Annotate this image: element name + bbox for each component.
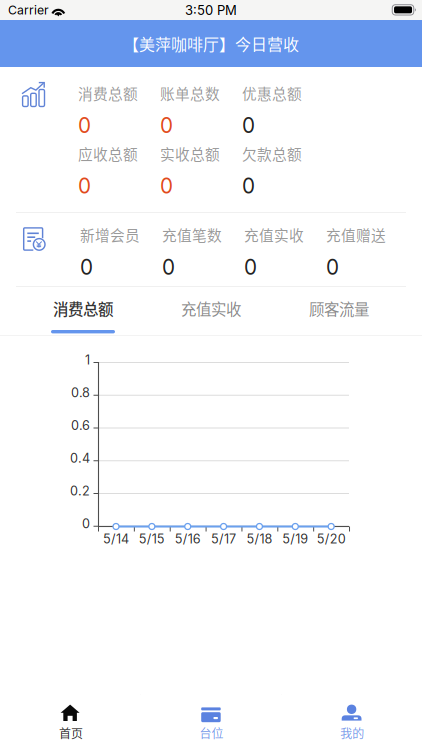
staticText: 充值实收 bbox=[244, 224, 304, 245]
staticText: 新增会员 bbox=[80, 224, 140, 245]
staticText: 0 bbox=[244, 255, 257, 280]
button[interactable]: 台位 bbox=[141, 694, 281, 750]
button[interactable]: 顾客流量 bbox=[275, 289, 403, 335]
staticText: 0.2 bbox=[70, 483, 90, 499]
staticText: 5/18 bbox=[246, 531, 272, 547]
staticText: 0 bbox=[160, 173, 173, 198]
staticText: 5/15 bbox=[139, 531, 165, 547]
staticText: 消费总额 bbox=[53, 297, 113, 320]
staticText: 充值实收 bbox=[181, 297, 241, 320]
staticText: 欠款总额 bbox=[242, 143, 302, 164]
staticText: 0 bbox=[242, 173, 255, 198]
staticText: 0 bbox=[326, 255, 339, 280]
button[interactable]: 首页 bbox=[0, 694, 141, 750]
staticText: 台位 bbox=[200, 724, 224, 742]
staticText: 充值赠送 bbox=[326, 224, 386, 245]
staticText: 消费总额 bbox=[78, 82, 138, 104]
staticText: 【美萍咖啡厅】今日营收 bbox=[123, 32, 299, 55]
staticText: 首页 bbox=[59, 724, 83, 742]
staticText: 0 bbox=[80, 255, 93, 280]
staticText: 0 bbox=[242, 113, 255, 138]
staticText: 5/17 bbox=[211, 531, 236, 547]
staticText: 5/20 bbox=[317, 531, 346, 547]
staticText: 应收总额 bbox=[78, 143, 138, 164]
button[interactable]: 消费总额 bbox=[19, 289, 147, 335]
staticText: 1 bbox=[85, 352, 90, 368]
staticText: 顾客流量 bbox=[309, 297, 369, 320]
staticText: 充值笔数 bbox=[162, 224, 222, 245]
staticText: 5/19 bbox=[282, 531, 308, 547]
staticText: Carrier bbox=[8, 3, 49, 17]
staticText: 0 bbox=[162, 255, 175, 280]
staticText: 0.6 bbox=[71, 418, 90, 433]
button[interactable]: 充值实收 bbox=[147, 289, 275, 335]
staticText: 账单总数 bbox=[160, 82, 220, 104]
staticText: 0 bbox=[78, 173, 91, 198]
staticText: 我的 bbox=[340, 724, 364, 742]
staticText: 5/14 bbox=[103, 531, 129, 547]
staticText: 5/16 bbox=[175, 531, 201, 547]
staticText: 0.8 bbox=[71, 385, 90, 400]
staticText: 3:50 PM bbox=[185, 2, 237, 18]
staticText: 0 bbox=[160, 113, 173, 138]
staticText: 0.4 bbox=[70, 451, 90, 466]
staticText: 实收总额 bbox=[160, 143, 220, 164]
staticText: 0 bbox=[78, 113, 91, 138]
staticText: 0 bbox=[82, 516, 90, 531]
staticText: 优惠总额 bbox=[242, 82, 302, 104]
button[interactable]: 我的 bbox=[281, 694, 422, 750]
